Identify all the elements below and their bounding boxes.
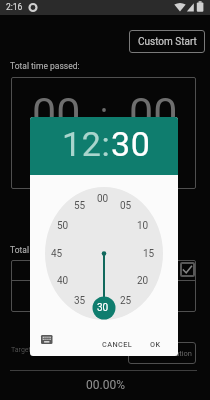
button[interactable]: OK bbox=[142, 336, 168, 352]
staticText: 00 bbox=[129, 88, 178, 138]
button[interactable]: 40 bbox=[51, 273, 75, 289]
staticText: 50 bbox=[57, 220, 69, 232]
staticText: 25 bbox=[120, 295, 132, 307]
staticText: 30 bbox=[97, 302, 109, 314]
staticText: Target: bbox=[11, 346, 33, 354]
button[interactable]: CANCEL bbox=[96, 336, 138, 352]
staticText: 00.00% bbox=[86, 378, 125, 392]
staticText: 20 bbox=[137, 275, 149, 287]
staticText: 30 bbox=[111, 124, 151, 164]
staticText: 10 bbox=[137, 220, 149, 232]
button[interactable]: Custom Start bbox=[129, 30, 205, 53]
button[interactable] bbox=[41, 335, 53, 345]
button[interactable]: 50 bbox=[51, 218, 75, 234]
staticText: 2:16 bbox=[6, 2, 23, 12]
button[interactable]: 10 bbox=[131, 218, 155, 234]
staticText: 00 bbox=[97, 193, 109, 205]
staticText: Set Duration bbox=[151, 349, 192, 358]
button[interactable]: 35 bbox=[68, 293, 92, 309]
staticText: Total time passed: bbox=[10, 61, 80, 71]
button[interactable]: 45 bbox=[45, 246, 69, 262]
staticText: Custom Start bbox=[138, 36, 197, 48]
button[interactable]: 30 bbox=[91, 300, 115, 316]
staticText: 45 bbox=[51, 248, 63, 260]
button[interactable]: 15 bbox=[137, 246, 161, 262]
staticText: Total time remaining: bbox=[10, 245, 90, 255]
button[interactable]: Set Duration bbox=[128, 342, 196, 364]
staticText: 55 bbox=[74, 200, 86, 212]
staticText: 12: bbox=[62, 124, 111, 164]
staticText: 05 bbox=[120, 200, 132, 212]
staticText: 15 bbox=[143, 248, 155, 260]
button[interactable]: 55 bbox=[68, 198, 92, 214]
staticText: 00 bbox=[32, 88, 81, 138]
staticText: 40 bbox=[57, 275, 69, 287]
staticText: 35 bbox=[74, 295, 86, 307]
button[interactable] bbox=[180, 262, 195, 277]
staticText: OK bbox=[150, 340, 161, 349]
button[interactable]: 00 bbox=[91, 191, 115, 207]
button[interactable]: 25 bbox=[114, 293, 138, 309]
button[interactable]: 05 bbox=[114, 198, 138, 214]
staticText: CANCEL bbox=[102, 340, 133, 349]
button[interactable]: 20 bbox=[131, 273, 155, 289]
